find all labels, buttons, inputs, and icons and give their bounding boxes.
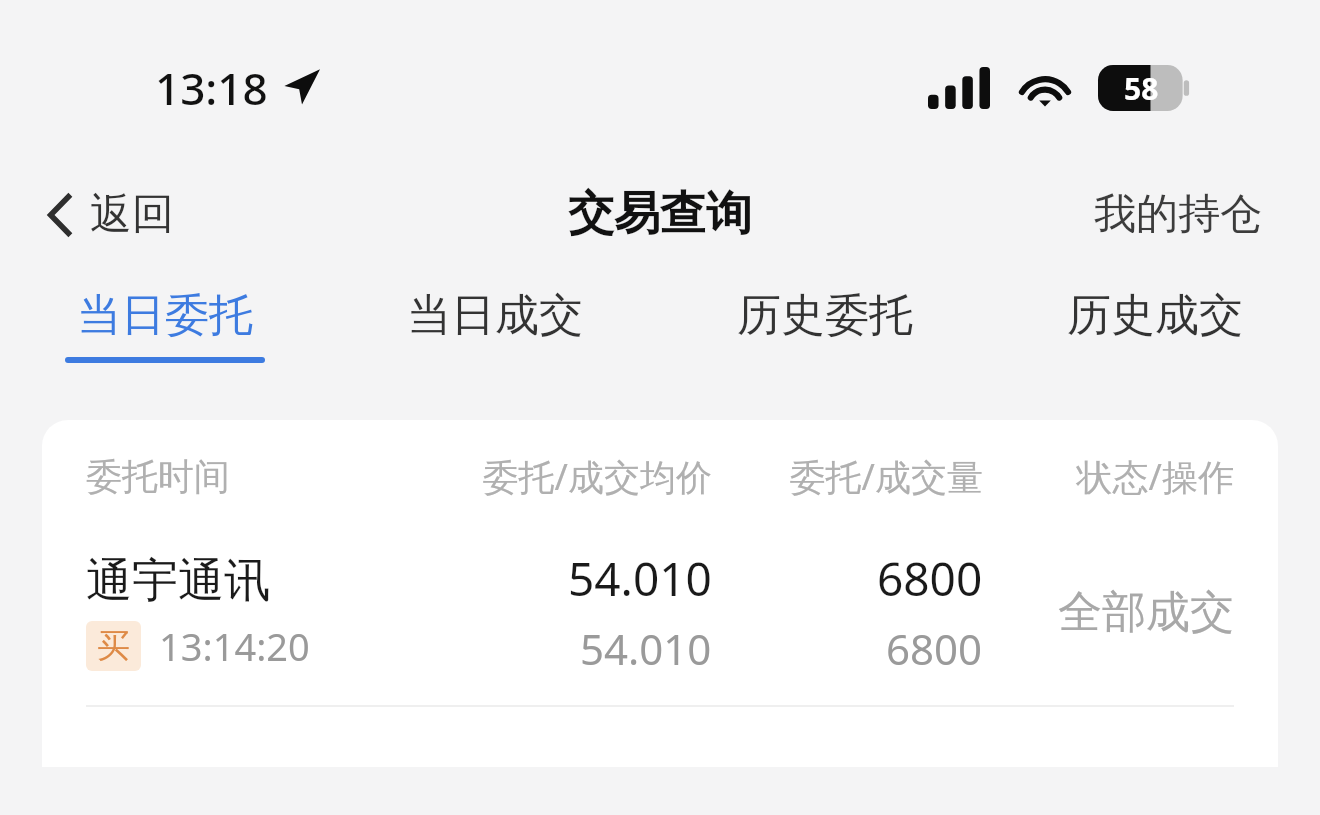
staticText: 交易查询: [568, 185, 752, 243]
button[interactable]: 返回: [0, 176, 198, 253]
staticText: 当日成交: [407, 288, 583, 343]
staticText: 54.010: [580, 620, 712, 677]
staticText: 委托/成交量: [712, 452, 983, 501]
staticText: 通宇通讯: [86, 552, 270, 610]
staticText: 全部成交: [1058, 585, 1234, 640]
staticText: 13:14:20: [159, 620, 310, 672]
staticText: 历史成交: [1067, 288, 1243, 343]
button[interactable]: 当日成交: [330, 268, 660, 390]
button[interactable]: 通宇通讯: [42, 517, 1278, 705]
staticText: 当日委托: [77, 288, 253, 343]
staticText: 买: [97, 625, 130, 667]
staticText: 委托/成交均价: [391, 452, 712, 501]
staticText: 返回: [90, 188, 174, 241]
button[interactable]: 历史委托: [660, 268, 990, 390]
button[interactable]: 当日委托: [0, 268, 330, 390]
staticText: 54.010: [568, 547, 712, 610]
staticText: 13:18: [155, 58, 268, 118]
button[interactable]: 历史成交: [990, 268, 1320, 390]
button[interactable]: 我的持仓: [1070, 176, 1320, 253]
staticText: 我的持仓: [1094, 188, 1262, 241]
staticText: 6800: [877, 547, 983, 610]
staticText: 委托时间: [86, 454, 391, 499]
staticText: 状态/操作: [983, 452, 1234, 501]
staticText: 6800: [886, 620, 983, 677]
staticText: 历史委托: [737, 288, 913, 343]
staticText: 58: [1124, 68, 1159, 109]
